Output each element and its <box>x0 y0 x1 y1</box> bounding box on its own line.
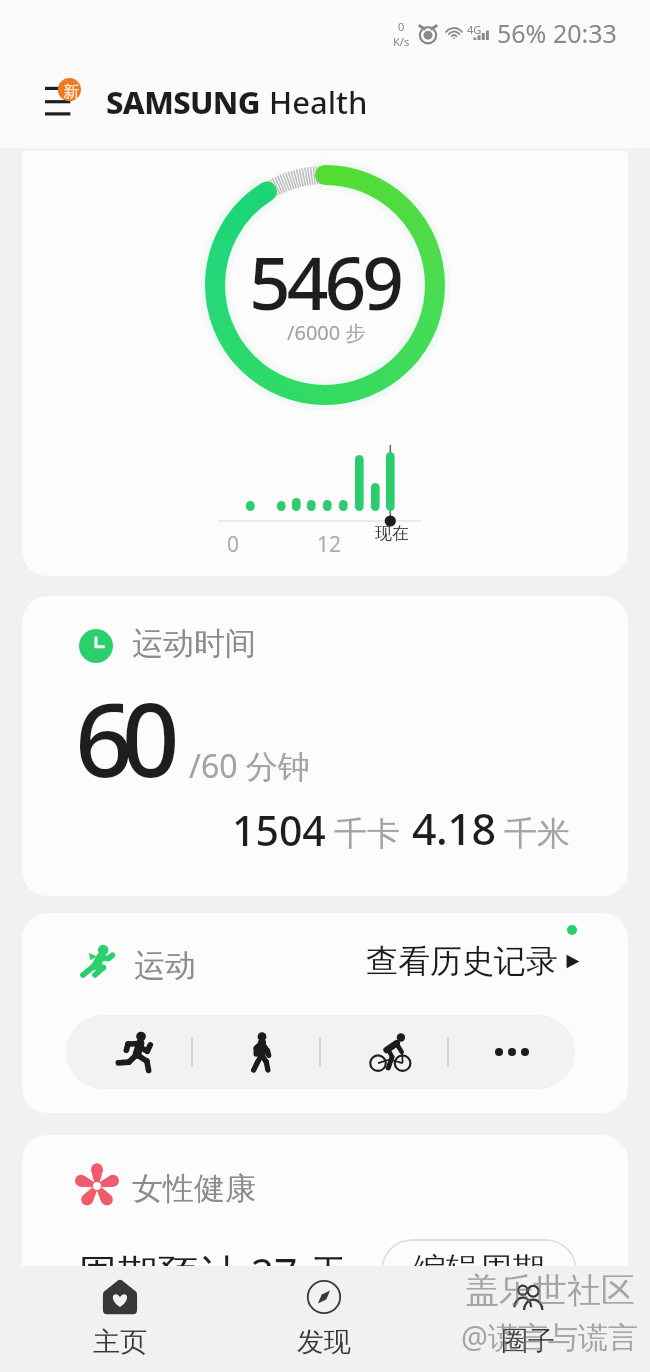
staticText: 56% <box>497 16 547 50</box>
button[interactable]: 女性健康 <box>22 1135 628 1345</box>
staticText: 12 <box>317 530 342 559</box>
button[interactable]: Menu <box>40 78 86 122</box>
button[interactable]: More options <box>449 1015 575 1089</box>
staticText: 周期预计 27 天 <box>76 1245 350 1301</box>
staticText: 1504 <box>232 802 326 858</box>
staticText: @谎言与谎言 <box>461 1316 638 1357</box>
staticText: 4G <box>467 22 482 37</box>
button[interactable]: Running <box>66 1015 191 1089</box>
staticText: Health <box>269 81 368 123</box>
staticText: 20:33 <box>553 16 617 50</box>
button[interactable]: 编辑周期 <box>381 1239 577 1301</box>
button[interactable]: 发现 <box>222 1266 426 1372</box>
staticText: 编辑周期 <box>413 1249 545 1291</box>
staticText: 0 <box>398 19 405 34</box>
staticText: 主页 <box>93 1325 147 1359</box>
staticText: /6000 步 <box>287 319 366 346</box>
staticText: 盖乐世社区 <box>465 1269 635 1312</box>
staticText: 千卡 <box>334 813 400 855</box>
staticText: 现在 <box>375 523 409 544</box>
button[interactable]: 运动 <box>22 913 628 1113</box>
staticText: 4.18 <box>412 799 496 858</box>
staticText: 运动时间 <box>132 624 256 663</box>
button[interactable]: Cycling <box>321 1015 447 1089</box>
staticText: 0 <box>227 530 240 559</box>
button[interactable]: 运动时间 <box>22 596 628 896</box>
staticText: 新 <box>63 82 79 102</box>
staticText: K/s <box>393 34 410 49</box>
button[interactable]: Walking <box>193 1015 319 1089</box>
button[interactable]: 5469 <box>22 151 628 576</box>
staticText: 运动 <box>134 946 196 985</box>
button[interactable]: 查看历史记录 <box>366 941 581 981</box>
staticText: 女性健康 <box>132 1169 256 1208</box>
staticText: 60 <box>75 669 169 807</box>
staticText: 圈子 <box>501 1324 555 1358</box>
staticText: SAMSUNG <box>106 81 260 123</box>
staticText: 5469 <box>249 232 401 331</box>
button[interactable]: 圈子 <box>426 1266 630 1372</box>
staticText: /60 分钟 <box>189 744 310 788</box>
staticText: 千米 <box>504 813 570 855</box>
staticText: 查看历史记录 <box>366 941 558 981</box>
button[interactable]: 主页 <box>18 1266 222 1372</box>
staticText: 发现 <box>297 1325 351 1359</box>
